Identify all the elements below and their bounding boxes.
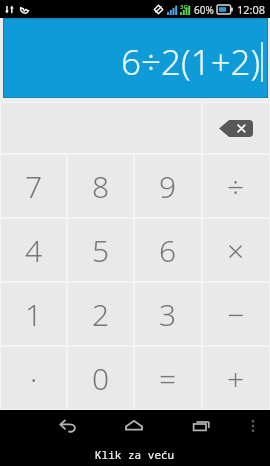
staticText: 0 xyxy=(92,358,110,399)
button[interactable]: 6÷2(1+2) xyxy=(4,19,267,97)
button[interactable]: + xyxy=(203,347,269,409)
staticText: . xyxy=(30,350,38,391)
staticText: − xyxy=(227,294,245,335)
button[interactable]: = xyxy=(135,347,201,409)
button[interactable]: 2 xyxy=(68,283,133,345)
staticText: 3G xyxy=(180,3,188,11)
staticText: Klik za veću xyxy=(95,447,175,462)
staticText: 6÷2(1+2) xyxy=(121,38,261,86)
button[interactable]: 1 xyxy=(1,283,66,345)
button[interactable]: Menu xyxy=(236,410,270,442)
staticText: = xyxy=(159,358,177,399)
button[interactable]: 0 xyxy=(68,347,133,409)
button[interactable]: 8 xyxy=(68,155,133,217)
staticText: 4 xyxy=(25,230,43,271)
staticText: 8 xyxy=(92,166,110,207)
button[interactable]: 7 xyxy=(1,155,66,217)
staticText: 9 xyxy=(159,166,177,207)
button[interactable]: Recent apps xyxy=(168,410,236,442)
button[interactable]: 9 xyxy=(135,155,201,217)
staticText: 60% xyxy=(194,3,214,17)
button[interactable]: ÷ xyxy=(203,155,269,217)
staticText: 5 xyxy=(92,230,110,271)
staticText: 7 xyxy=(25,166,43,207)
button[interactable]: 4 xyxy=(1,219,66,281)
button[interactable]: − xyxy=(203,283,269,345)
button[interactable]: . xyxy=(1,347,66,409)
button[interactable]: Backspace xyxy=(203,103,269,153)
button[interactable]: 3 xyxy=(135,283,201,345)
staticText: 12:08 xyxy=(237,2,266,17)
button[interactable]: 5 xyxy=(68,219,133,281)
staticText: 6 xyxy=(159,230,177,271)
button[interactable]: Back xyxy=(33,410,100,442)
staticText: + xyxy=(227,358,245,399)
button[interactable]: Home xyxy=(100,410,168,442)
staticText: ÷ xyxy=(227,166,245,207)
staticText: × xyxy=(227,230,245,271)
staticText: 3 xyxy=(159,294,177,335)
staticText: 1 xyxy=(25,294,43,335)
button[interactable]: × xyxy=(203,219,269,281)
button[interactable]: 6 xyxy=(135,219,201,281)
staticText: 2 xyxy=(92,294,110,335)
